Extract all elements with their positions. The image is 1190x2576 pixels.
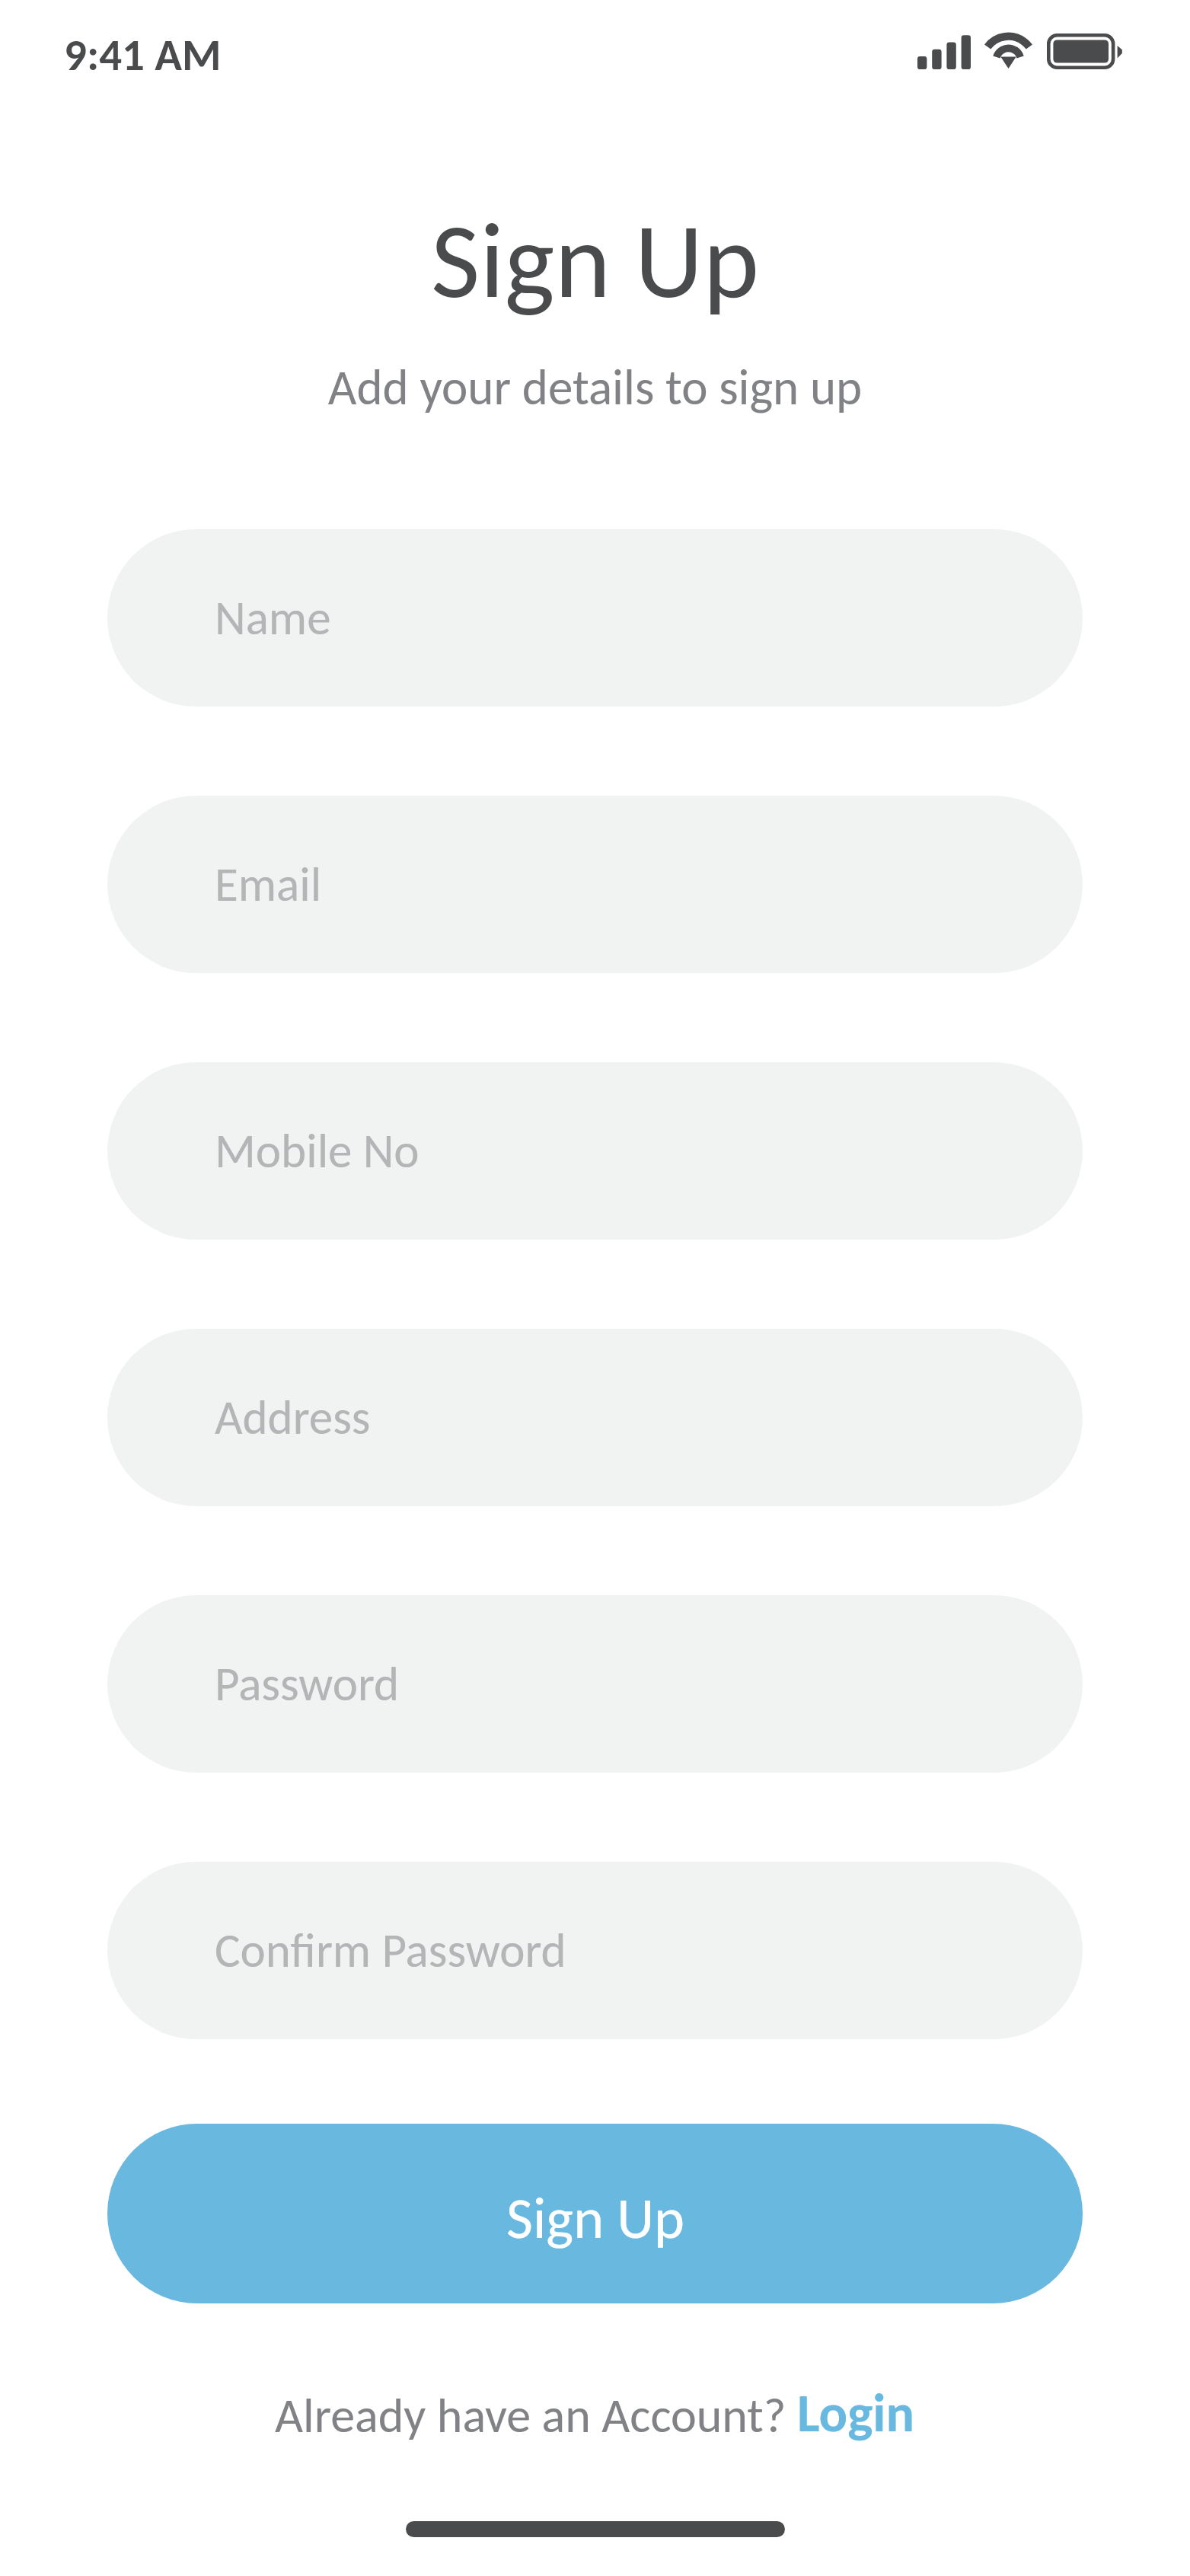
button[interactable]: Confirm Password (107, 1862, 1083, 2039)
other: Cellular signal (917, 33, 971, 69)
staticText: Sign Up (0, 196, 1190, 326)
staticText: Password (215, 1655, 400, 1713)
staticText: Add your details to sign up (0, 357, 1190, 417)
staticText: Already have an Account? (275, 2386, 797, 2445)
button[interactable]: Email (107, 796, 1083, 973)
staticText: Confirm Password (215, 1921, 566, 1980)
other: Battery (1047, 34, 1122, 69)
staticText: Sign Up (506, 2183, 684, 2254)
staticText: Name (215, 589, 331, 647)
button[interactable]: Mobile No (107, 1062, 1083, 1240)
staticText: Login (797, 2380, 915, 2445)
staticText: Address (215, 1388, 371, 1447)
button[interactable]: Sign Up (107, 2124, 1083, 2303)
staticText: 9:41 AM (64, 27, 222, 82)
staticText: Email (215, 855, 322, 914)
staticText: Mobile No (215, 1122, 420, 1180)
button[interactable]: Address (107, 1329, 1083, 1506)
button[interactable]: Name (107, 529, 1083, 707)
other: Wi-Fi (984, 32, 1032, 69)
button[interactable]: Password (107, 1595, 1083, 1773)
button[interactable]: Already have an Account? (0, 2380, 1190, 2445)
